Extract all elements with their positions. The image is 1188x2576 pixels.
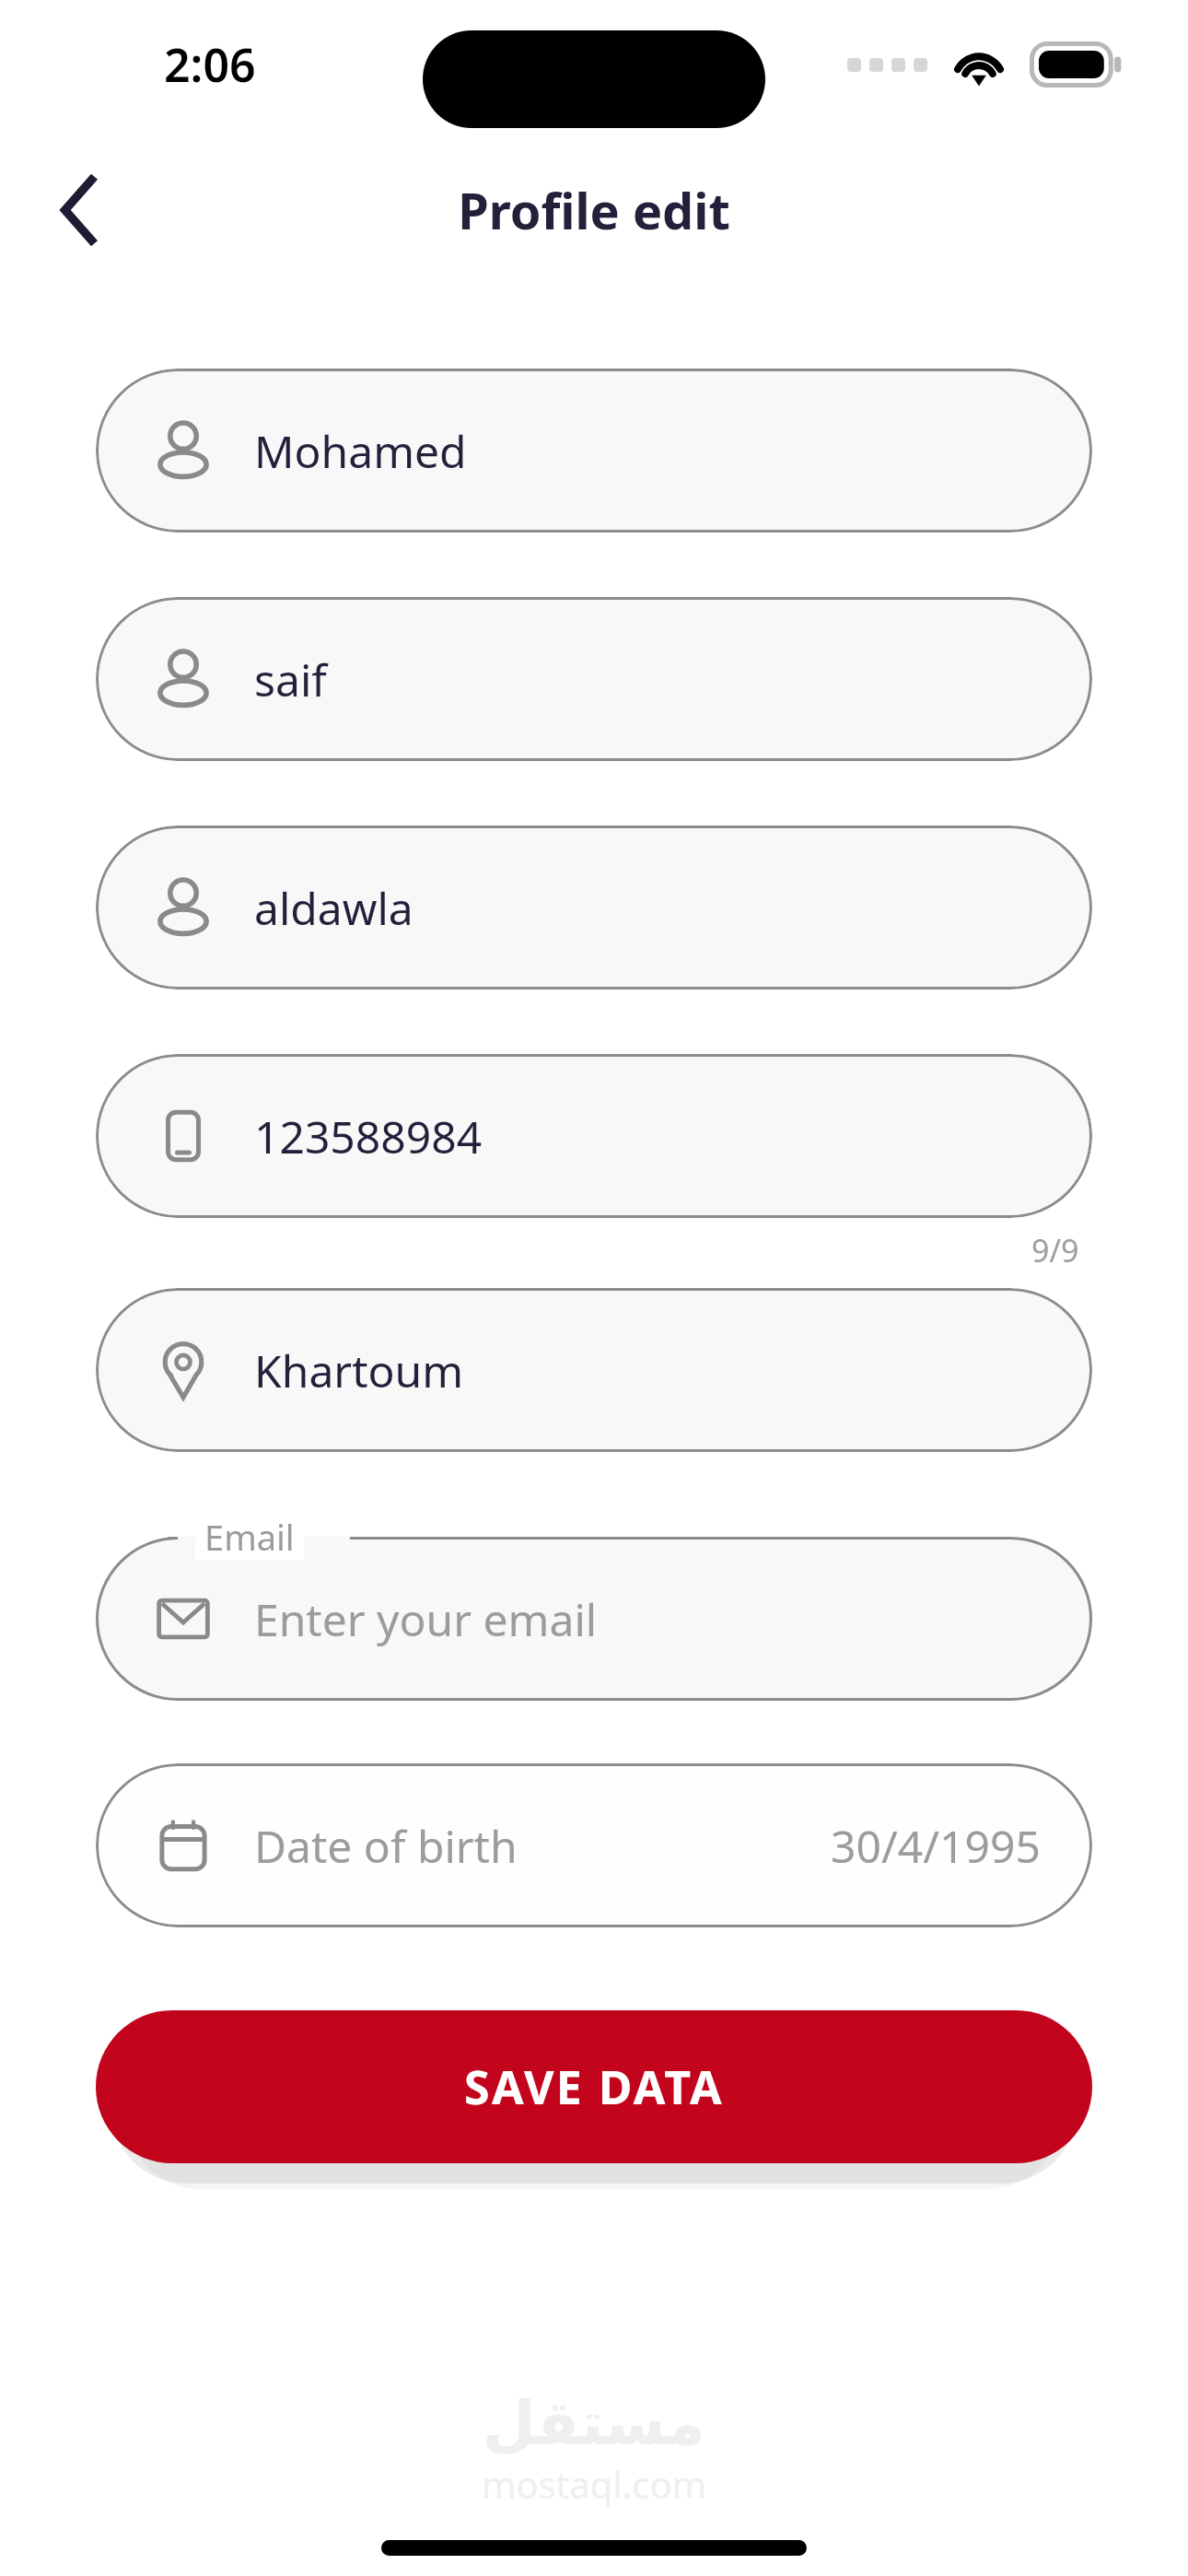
button[interactable]: Enter your email — [96, 1537, 1092, 1701]
button[interactable]: SAVE DATA — [96, 2010, 1092, 2163]
staticText: aldawla — [254, 878, 413, 938]
staticText: SAVE DATA — [464, 2055, 724, 2118]
button[interactable]: saif — [96, 597, 1092, 761]
staticText: 2:06 — [164, 33, 256, 96]
button[interactable]: Khartoum — [96, 1288, 1092, 1452]
staticText: 123588984 — [254, 1107, 483, 1166]
staticText: Mohamed — [254, 421, 467, 481]
staticText: mostaql.com — [482, 2459, 707, 2509]
staticText: 9/9 — [1031, 1229, 1079, 1271]
button[interactable]: Mohamed — [96, 369, 1092, 533]
staticText: 30/4/1995 — [831, 1816, 1041, 1876]
staticText: Enter your email — [254, 1589, 598, 1649]
staticText: saif — [254, 650, 327, 709]
staticText: Date of birth — [254, 1816, 518, 1876]
staticText: Profile edit — [458, 176, 730, 244]
staticText: Khartoum — [254, 1341, 464, 1400]
staticText: مستقل — [483, 2388, 705, 2459]
button[interactable]: Back — [28, 159, 129, 261]
staticText: Email — [204, 1513, 295, 1561]
button[interactable]: Date of birth — [96, 1763, 1092, 1927]
button[interactable]: aldawla — [96, 825, 1092, 989]
button[interactable]: 123588984 — [96, 1054, 1092, 1218]
